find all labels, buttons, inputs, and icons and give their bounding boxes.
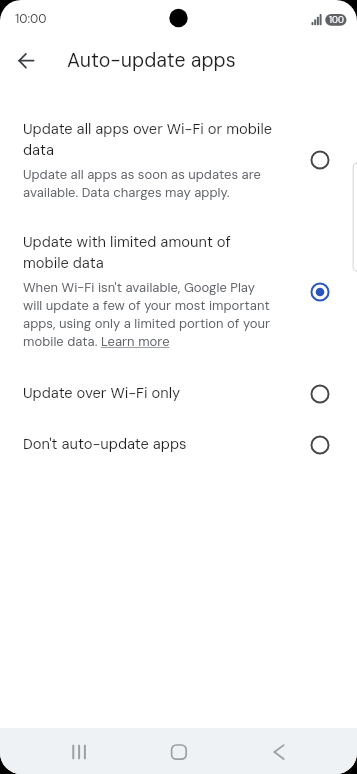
staticText: Don't auto-update apps [23, 434, 187, 453]
button[interactable]: Update over Wi-Fi only [23, 383, 275, 402]
staticText: When Wi-Fi isn't available, Google Play … [23, 279, 275, 350]
button[interactable]: Update all apps over Wi-Fi or mobile dat… [23, 119, 275, 201]
staticText: Update all apps over Wi-Fi or mobile dat… [23, 119, 275, 160]
button[interactable]: Don't auto-update apps [300, 425, 340, 465]
button[interactable]: Update over Wi-Fi only [300, 374, 340, 414]
button[interactable]: Don't auto-update apps [23, 434, 275, 453]
button[interactable]: Recent apps [59, 728, 100, 774]
button[interactable]: Update with limited amount of mobile dat… [300, 272, 340, 312]
button[interactable]: Back [259, 728, 300, 774]
staticText: Update with limited amount of mobile dat… [23, 232, 275, 273]
staticText: 100 [329, 14, 344, 26]
staticText: Update all apps as soon as updates are a… [23, 166, 275, 201]
button[interactable]: Back [6, 41, 46, 81]
staticText: Auto-update apps [67, 48, 236, 73]
button[interactable]: Update all apps over Wi-Fi or mobile dat… [300, 140, 340, 180]
button[interactable]: Update with limited amount of mobile dat… [23, 232, 275, 350]
staticText: 10:00 [15, 11, 47, 27]
staticText: Update over Wi-Fi only [23, 383, 181, 402]
button[interactable]: Home [159, 728, 200, 774]
